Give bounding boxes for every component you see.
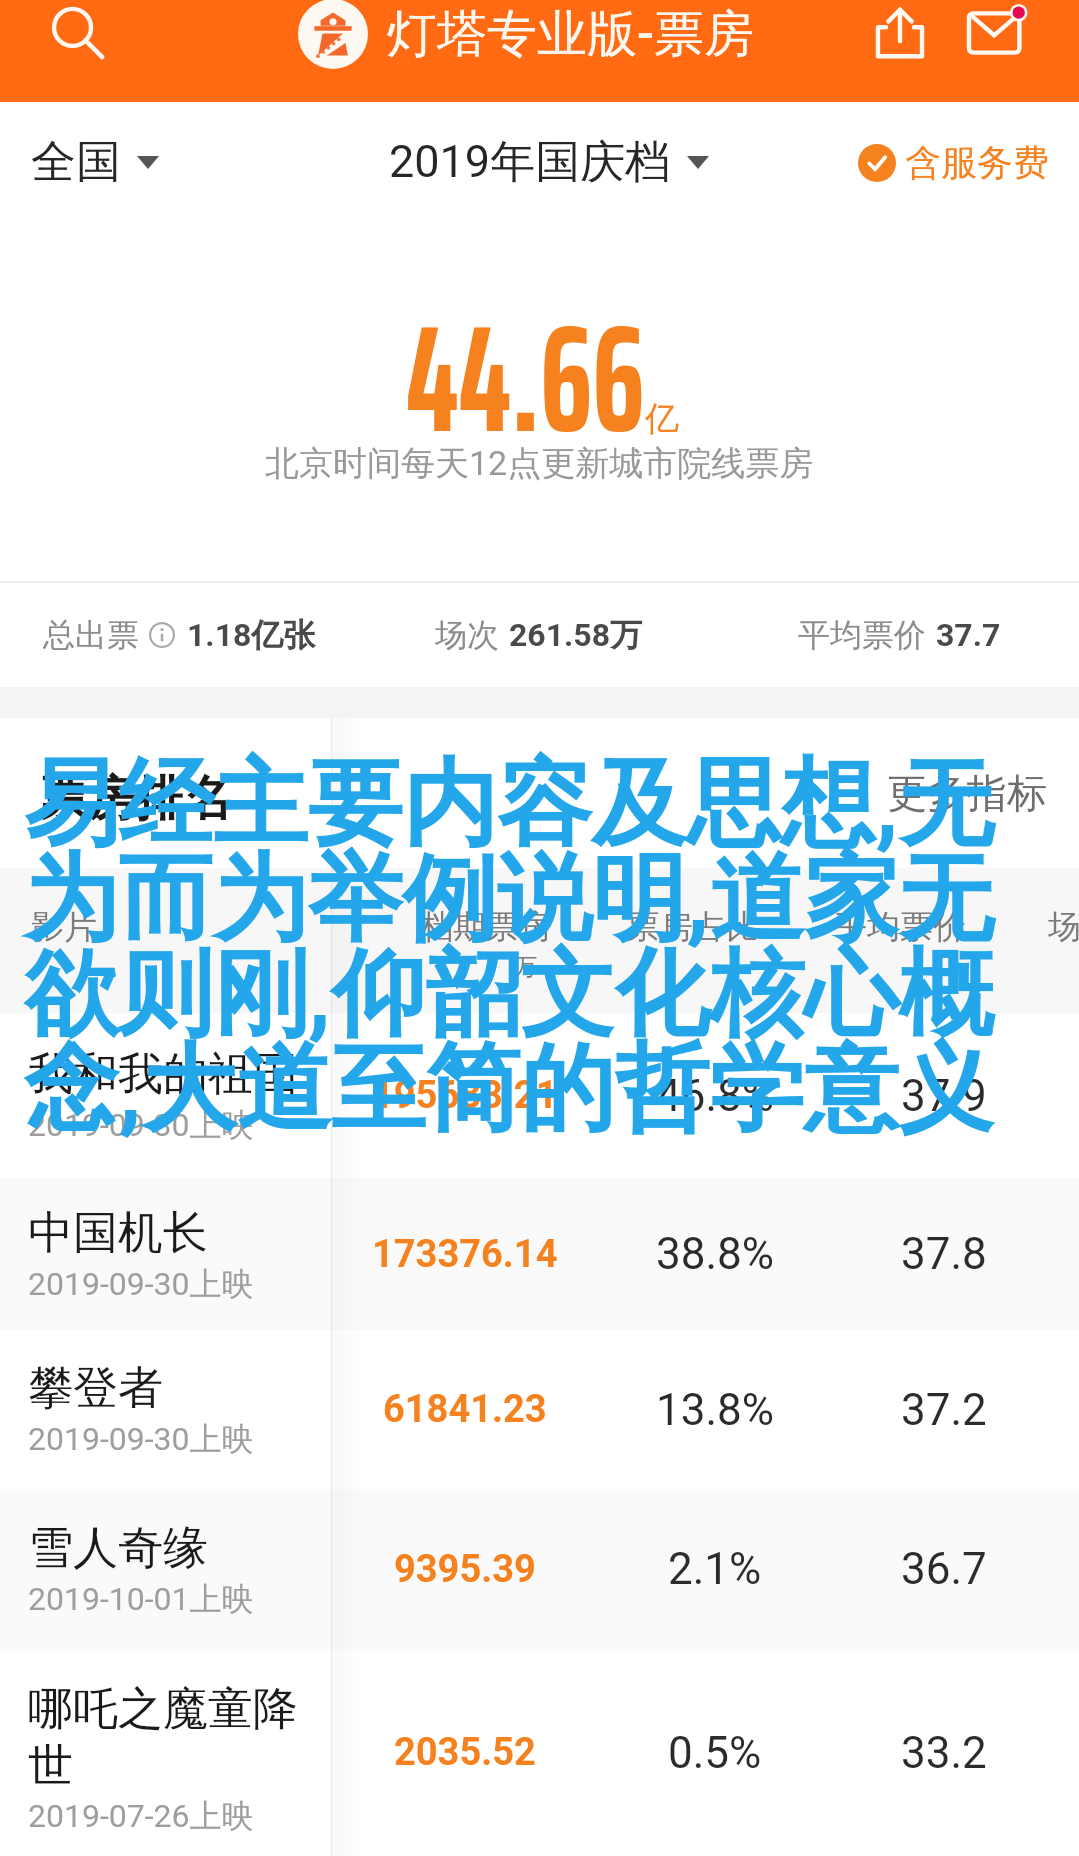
staticText: 灯塔专业版-票房 [387,3,754,66]
staticText: 36.7 [901,1543,987,1595]
staticText: 票房排名 [40,769,232,829]
staticText: 攀登者 [28,1360,163,1417]
staticText: 2019年国庆档 [389,134,671,191]
staticText: 37.9 [901,1070,987,1122]
staticText: 万 [513,952,537,982]
staticText: 总出票 [43,615,139,655]
staticText: 2019-09-30上映 [28,1105,254,1145]
staticText: 2035.52 [394,1730,536,1775]
staticText: 亿 [645,397,679,440]
staticText: 档期票房 [420,906,552,948]
button[interactable]: 攀登者 [0,1330,1079,1489]
staticText: 37.2 [901,1384,987,1436]
button[interactable]: Share [855,0,945,78]
button[interactable]: 更多指标 [887,768,1047,818]
button[interactable]: 2019年国庆档 [389,134,709,191]
staticText: 更多指标 [887,768,1047,818]
staticText: 全国 [31,134,121,191]
staticText: 2019-09-30上映 [28,1419,254,1459]
button[interactable]: 中国机长 [0,1178,1079,1330]
staticText: 37.8 [901,1228,987,1280]
staticText: 场 [1048,906,1079,948]
staticText: 易经主要内容及思想,无为而为举例说明,道家无欲则刚,仰韶文化核心概念,大道至简的… [24,745,1048,1149]
staticText: 场次 [435,615,499,655]
staticText: 平均票价 [834,906,966,948]
staticText: 2.1% [668,1543,762,1595]
button[interactable]: Messages [952,0,1042,78]
staticText: 44.66 [406,261,645,497]
staticText: 38.8% [656,1228,775,1280]
staticText: 61841.23 [383,1387,547,1432]
staticText: 9395.39 [394,1547,536,1592]
staticText: 我和我的祖国 [28,1046,298,1103]
button[interactable]: 雪人奇缘 [0,1489,1079,1649]
staticText: 195683.21 [372,1073,558,1118]
staticText: 13.8% [656,1384,775,1436]
staticText: 173376.14 [372,1232,558,1277]
button[interactable]: 哪吒之魔童降世 [0,1649,1079,1856]
staticText: 2019-10-01上映 [28,1579,254,1619]
staticText: 0.5% [668,1727,762,1779]
staticText: 票房占比 [627,906,759,948]
staticText: 雪人奇缘 [28,1520,208,1577]
staticText: 1.18亿张 [187,615,316,655]
staticText: 37.7 [936,616,1001,654]
button[interactable]: 含服务费 [858,140,1049,185]
button[interactable]: Search [32,0,122,78]
staticText: 261.58万 [509,615,643,655]
staticText: 哪吒之魔童降世 [28,1681,319,1794]
staticText: 影片 [31,906,97,948]
button[interactable]: 全国 [31,134,159,191]
staticText: 46.8% [656,1070,775,1122]
staticText: 33.2 [901,1727,987,1779]
staticText: 北京时间每天12点更新城市院线票房 [265,442,814,485]
staticText: 平均票价 [798,615,926,655]
staticText: 2019-09-30上映 [28,1264,254,1304]
button[interactable]: 我和我的祖国 [0,1013,1079,1178]
staticText: 中国机长 [28,1205,208,1262]
staticText: 含服务费 [905,140,1049,185]
staticText: 2019-07-26上映 [28,1796,254,1836]
